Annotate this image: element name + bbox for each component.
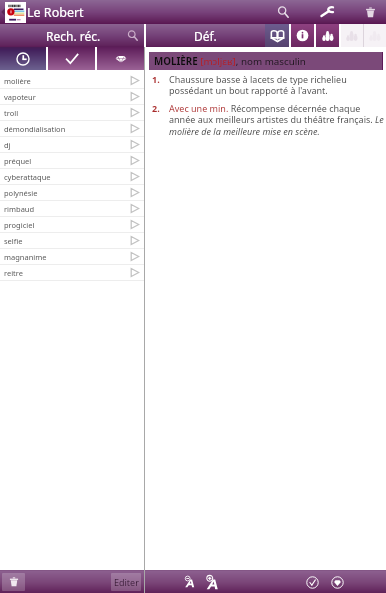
button[interactable]: rimbaud [0, 201, 144, 216]
button[interactable]: vapoteur [0, 89, 144, 104]
staticText: selfie [4, 236, 23, 246]
button[interactable]: dj [0, 137, 144, 152]
button[interactable]: Known words [48, 47, 95, 70]
staticText: reitre [4, 268, 23, 278]
button[interactable]: Synonyms [316, 24, 339, 47]
button[interactable]: Rech. réc. [0, 24, 144, 47]
button[interactable]: selfie [0, 233, 144, 248]
staticText: dj [4, 140, 11, 150]
staticText: magnanime [4, 252, 47, 262]
button[interactable]: Recent searches [0, 47, 46, 70]
button[interactable]: Definition [265, 24, 289, 47]
button[interactable]: Conjugation [341, 24, 363, 47]
button[interactable]: reitre [0, 265, 144, 280]
button[interactable]: progiciel [0, 217, 144, 232]
staticText: Déf. [194, 28, 217, 44]
button[interactable]: troll [0, 105, 144, 120]
button[interactable]: Editer [111, 573, 141, 591]
button[interactable]: Search [268, 0, 298, 24]
staticText: troll [4, 108, 19, 118]
button[interactable]: préquel [0, 153, 144, 168]
button[interactable]: Decrease text size [182, 574, 197, 589]
button[interactable]: Add to favorites [329, 574, 345, 590]
button[interactable]: molière [0, 73, 144, 88]
button[interactable]: Favorites [97, 47, 144, 70]
staticText: 2. [152, 102, 160, 114]
staticText: vapoteur [4, 92, 36, 102]
staticText: MOLIÈRE [mɔljɛʁ], nom masculin [154, 55, 306, 68]
button[interactable]: démondialisation [0, 121, 144, 136]
staticText: Avec une min. Récompense décernée chaque… [169, 102, 384, 138]
button[interactable]: Increase text size [203, 573, 221, 591]
staticText: cyberattaque [4, 172, 51, 182]
staticText: démondialisation [4, 124, 66, 134]
staticText: Editer [114, 576, 139, 588]
staticText: 1. [152, 73, 160, 85]
staticText: progiciel [4, 220, 35, 230]
button[interactable]: Delete [358, 0, 382, 24]
button[interactable]: Settings [313, 0, 341, 24]
staticText: Chaussure basse à lacets de type richeli… [169, 73, 384, 97]
staticText: polynésie [4, 188, 38, 198]
staticText: Rech. réc. [46, 28, 101, 44]
staticText: préquel [4, 156, 32, 166]
staticText: rimbaud [4, 204, 35, 214]
button[interactable]: Information [291, 24, 314, 47]
button[interactable]: Delete entries [2, 573, 25, 591]
button[interactable]: magnanime [0, 249, 144, 264]
button[interactable]: polynésie [0, 185, 144, 200]
staticText: Le Robert [27, 4, 84, 21]
button[interactable]: cyberattaque [0, 169, 144, 184]
button[interactable]: Mark as known [304, 574, 320, 590]
staticText: molière [4, 76, 31, 86]
